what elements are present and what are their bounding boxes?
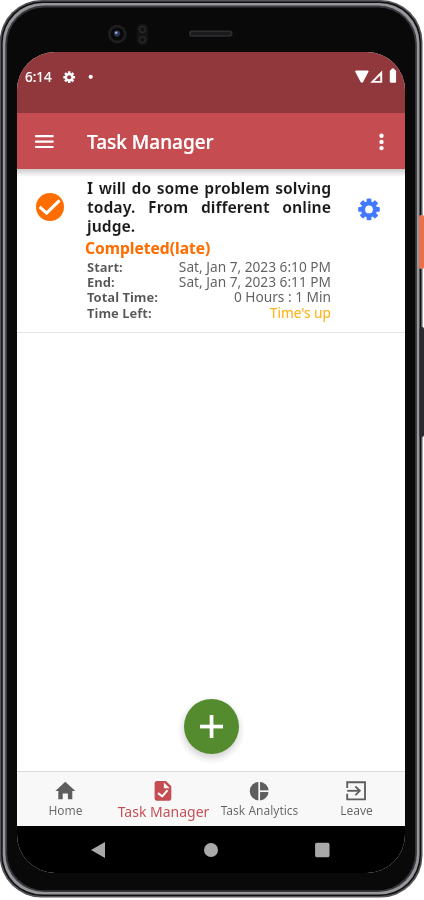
staticText: Leave <box>308 802 405 818</box>
staticText: Task Manager <box>115 802 212 821</box>
button[interactable]: Task Manager <box>115 772 212 826</box>
staticText: 6:14 <box>25 68 52 86</box>
button[interactable]: Task Analytics <box>211 772 308 826</box>
staticText: Sat, Jan 7, 2023 6:10 PM <box>87 257 331 276</box>
staticText: 0 Hours : 1 Min <box>87 287 331 306</box>
button[interactable]: Recent apps <box>299 828 345 872</box>
staticText: Start: <box>87 258 123 276</box>
staticText: Time Left: <box>87 304 152 322</box>
button[interactable]: Add task <box>184 699 239 754</box>
button[interactable]: Open navigation drawer <box>24 121 64 161</box>
staticText: Completed(late) <box>85 237 211 258</box>
button[interactable]: Task settings <box>351 191 387 227</box>
button[interactable]: Completed <box>36 193 64 221</box>
staticText: Task Analytics <box>211 802 308 818</box>
staticText: Total Time: <box>87 288 158 306</box>
staticText: I will do some problem solving today. Fr… <box>87 177 331 236</box>
button[interactable]: Task: I will do some problem solving tod… <box>17 169 405 332</box>
button[interactable]: Home <box>17 772 114 826</box>
button[interactable]: More options <box>362 122 401 162</box>
staticText: Home <box>17 802 114 818</box>
staticText: Time's up <box>87 303 331 322</box>
button[interactable]: Home <box>188 828 234 872</box>
staticText: Task Manager <box>87 129 214 155</box>
staticText: Sat, Jan 7, 2023 6:11 PM <box>87 272 331 291</box>
staticText: End: <box>87 273 115 291</box>
button[interactable]: Leave <box>308 772 405 826</box>
button[interactable]: Back <box>75 828 121 872</box>
